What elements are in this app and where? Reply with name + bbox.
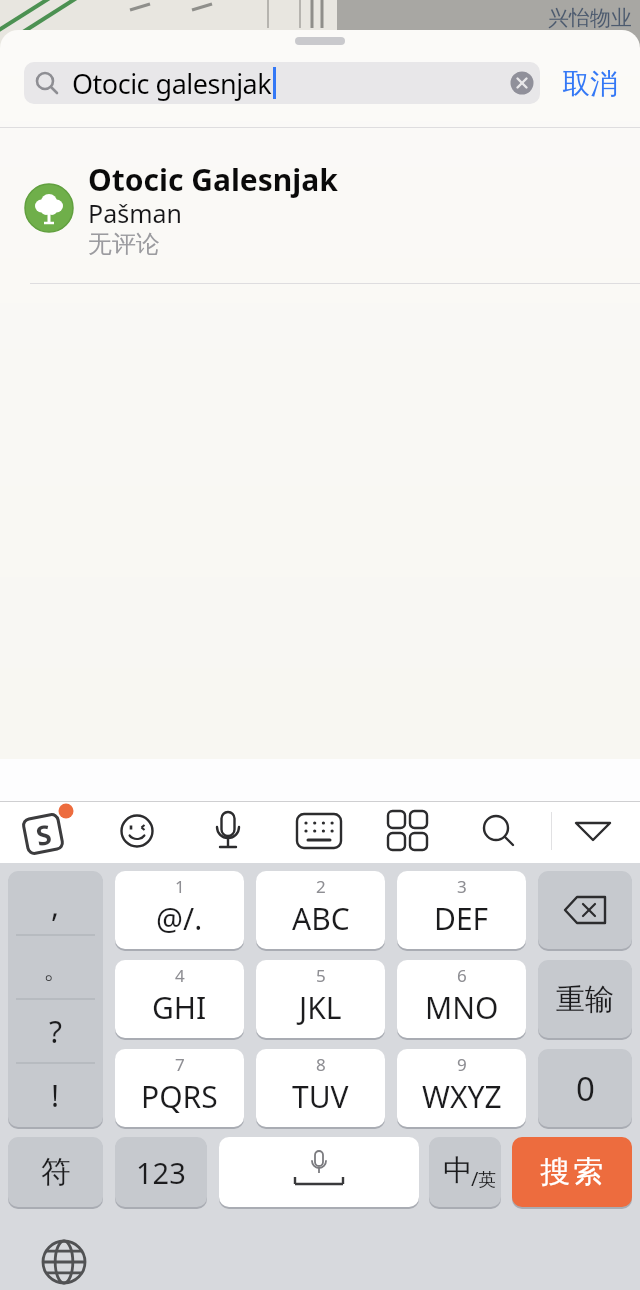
staticText: PQRS [141, 1076, 218, 1117]
button[interactable] [219, 1137, 419, 1207]
staticText: ABC [292, 898, 350, 939]
button[interactable]: Otocic galesnjak [24, 62, 540, 104]
button[interactable]: 8 [256, 1049, 385, 1127]
staticText: JKL [299, 987, 342, 1028]
staticText: S [33, 815, 54, 854]
staticText: 重输 [556, 981, 614, 1018]
button[interactable]: 3 [397, 871, 526, 949]
staticText: 英 [478, 1169, 496, 1192]
staticText: 3 [457, 875, 467, 898]
staticText: 8 [316, 1053, 326, 1076]
staticText: 1 [175, 875, 185, 898]
staticText: 中 [443, 1152, 472, 1189]
button[interactable]: 123 [115, 1137, 207, 1207]
button[interactable]: 0 [538, 1049, 632, 1127]
staticText: 。 [43, 953, 69, 986]
button[interactable]: 1 [115, 871, 244, 949]
button[interactable] [34, 1232, 94, 1290]
staticText: 0 [576, 1066, 595, 1111]
button[interactable] [469, 801, 529, 861]
button[interactable]: S [17, 804, 75, 860]
staticText: 123 [136, 1153, 186, 1192]
staticText: 取消 [562, 66, 618, 101]
button[interactable]: , [8, 871, 103, 1127]
staticText: DEF [434, 898, 489, 939]
button[interactable]: Otocic Galesnjak [0, 128, 640, 283]
staticText: 9 [457, 1053, 467, 1076]
button[interactable]: 7 [115, 1049, 244, 1127]
button[interactable] [198, 801, 258, 861]
staticText: ? [49, 1011, 63, 1052]
button[interactable]: 中 [429, 1137, 501, 1207]
button[interactable]: 2 [256, 871, 385, 949]
button[interactable]: 重输 [538, 960, 632, 1038]
staticText: GHI [152, 987, 207, 1028]
staticText: 无评论 [88, 229, 160, 259]
staticText: MNO [425, 987, 499, 1028]
staticText: 5 [316, 964, 326, 987]
staticText: Otocic galesnjak [72, 65, 272, 102]
button[interactable]: 取消 [550, 56, 630, 110]
staticText: TUV [292, 1076, 349, 1117]
staticText: 兴怡物业 [548, 5, 632, 31]
staticText: 符 [41, 1153, 71, 1191]
button[interactable]: 搜索 [512, 1137, 632, 1207]
staticText: 7 [175, 1053, 185, 1076]
staticText: / [471, 1165, 479, 1192]
staticText: @/. [156, 898, 203, 939]
staticText: Pašman [88, 196, 182, 230]
staticText: Otocic Galesnjak [88, 159, 338, 200]
button[interactable]: 4 [115, 960, 244, 1038]
staticText: 2 [316, 875, 326, 898]
staticText: WXYZ [422, 1076, 502, 1117]
staticText: 4 [175, 964, 185, 987]
button[interactable] [538, 871, 632, 949]
button[interactable] [563, 801, 623, 861]
button[interactable]: 5 [256, 960, 385, 1038]
button[interactable] [379, 801, 439, 861]
button[interactable] [107, 801, 167, 861]
button[interactable]: 6 [397, 960, 526, 1038]
staticText: , [51, 885, 60, 926]
staticText: ! [51, 1075, 60, 1116]
staticText: 6 [457, 964, 467, 987]
button[interactable]: 9 [397, 1049, 526, 1127]
button[interactable] [289, 801, 349, 861]
staticText: 搜索 [539, 1153, 605, 1191]
button[interactable]: 符 [8, 1137, 103, 1207]
